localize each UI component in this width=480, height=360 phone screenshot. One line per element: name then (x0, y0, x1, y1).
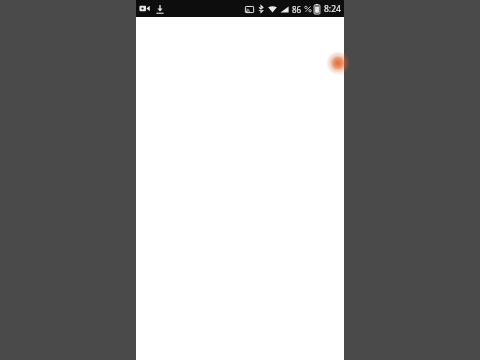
button[interactable]: Loading indicator (326, 51, 350, 75)
staticText: 8:24 (324, 3, 341, 15)
staticText: 86 (292, 4, 302, 15)
